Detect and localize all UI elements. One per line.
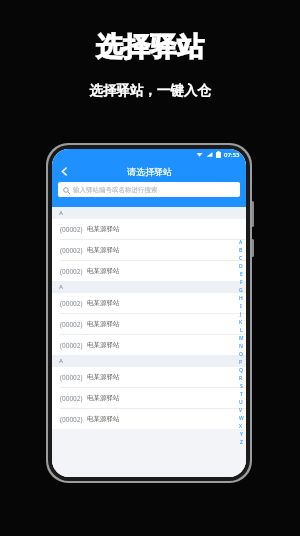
button[interactable]: (00002) xyxy=(52,409,246,429)
staticText: C xyxy=(239,255,243,262)
staticText: 07:53 xyxy=(224,151,240,159)
staticText: X xyxy=(239,423,243,430)
button[interactable]: F xyxy=(237,278,245,286)
button[interactable]: Y xyxy=(237,430,245,438)
staticText: A xyxy=(59,209,63,217)
staticText: G xyxy=(239,287,243,294)
staticText: E xyxy=(240,271,243,278)
button[interactable]: K xyxy=(237,318,245,326)
staticText: T xyxy=(240,391,243,398)
button[interactable]: (00002) xyxy=(52,388,246,408)
staticText: 输入驿站编号或名称进行搜索 xyxy=(73,186,158,194)
button[interactable]: I xyxy=(237,302,245,310)
staticText: 选择驿站 xyxy=(96,30,204,64)
button[interactable]: Z xyxy=(237,438,245,446)
button[interactable]: G xyxy=(237,286,245,294)
button[interactable]: Q xyxy=(237,366,245,374)
staticText: (00002) xyxy=(60,415,83,424)
button[interactable]: T xyxy=(237,390,245,398)
staticText: 请选择驿站 xyxy=(127,166,172,177)
button[interactable]: E xyxy=(237,270,245,278)
staticText: (00002) xyxy=(60,341,83,350)
staticText: W xyxy=(239,415,244,422)
staticText: L xyxy=(240,327,243,334)
button[interactable]: (00002) xyxy=(52,335,246,355)
button[interactable]: P xyxy=(237,358,245,366)
staticText: 选择驿站，一键入仓 xyxy=(89,82,211,99)
button[interactable]: (00002) xyxy=(52,261,246,281)
button[interactable]: C xyxy=(237,254,245,262)
button[interactable]: (00002) xyxy=(52,314,246,334)
staticText: F xyxy=(240,279,243,286)
button[interactable]: O xyxy=(237,350,245,358)
staticText: (00002) xyxy=(60,373,83,382)
staticText: (00002) xyxy=(60,320,83,329)
button[interactable]: (00002) xyxy=(52,367,246,387)
staticText: 电某源驿站 xyxy=(87,341,120,349)
staticText: M xyxy=(239,335,244,342)
button[interactable]: W xyxy=(237,414,245,422)
staticText: D xyxy=(239,263,243,270)
staticText: 电某源驿站 xyxy=(87,320,120,328)
button[interactable]: R xyxy=(237,374,245,382)
staticText: J xyxy=(240,311,242,318)
staticText: S xyxy=(240,383,243,390)
staticText: 电某源驿站 xyxy=(87,267,120,275)
button[interactable]: (00002) xyxy=(52,293,246,313)
staticText: 电某源驿站 xyxy=(87,415,120,423)
staticText: (00002) xyxy=(60,394,83,403)
staticText: 电某源驿站 xyxy=(87,373,120,381)
staticText: Q xyxy=(239,367,243,374)
button[interactable]: A xyxy=(237,238,245,246)
staticText: (00002) xyxy=(60,267,83,276)
staticText: H xyxy=(239,295,243,302)
staticText: (00002) xyxy=(60,246,83,255)
staticText: 电某源驿站 xyxy=(87,299,120,307)
staticText: A xyxy=(59,357,63,365)
staticText: (00002) xyxy=(60,225,83,234)
button[interactable]: M xyxy=(237,334,245,342)
button[interactable]: L xyxy=(237,326,245,334)
staticText: V xyxy=(239,407,243,414)
button[interactable]: U xyxy=(237,398,245,406)
staticText: 电某源驿站 xyxy=(87,246,120,254)
staticText: 电某源驿站 xyxy=(87,225,120,233)
staticText: 电某源驿站 xyxy=(87,394,120,402)
button[interactable]: S xyxy=(237,382,245,390)
staticText: Z xyxy=(240,439,243,446)
staticText: B xyxy=(239,247,243,254)
button[interactable]: N xyxy=(237,342,245,350)
staticText: U xyxy=(239,399,243,406)
button[interactable]: 返回 xyxy=(54,161,74,181)
button[interactable]: V xyxy=(237,406,245,414)
button[interactable]: 输入驿站编号或名称进行搜索 xyxy=(58,182,240,197)
staticText: O xyxy=(239,351,243,358)
button[interactable]: J xyxy=(237,310,245,318)
button[interactable]: (00002) xyxy=(52,219,246,239)
button[interactable]: (00002) xyxy=(52,240,246,260)
staticText: I xyxy=(240,303,242,310)
staticText: K xyxy=(239,319,243,326)
staticText: N xyxy=(239,343,243,350)
staticText: Y xyxy=(240,431,243,438)
button[interactable]: H xyxy=(237,294,245,302)
staticText: R xyxy=(239,375,243,382)
staticText: P xyxy=(239,359,243,366)
staticText: (00002) xyxy=(60,299,83,308)
button[interactable]: D xyxy=(237,262,245,270)
staticText: A xyxy=(239,239,243,246)
button[interactable]: B xyxy=(237,246,245,254)
staticText: A xyxy=(59,283,63,291)
button[interactable]: X xyxy=(237,422,245,430)
